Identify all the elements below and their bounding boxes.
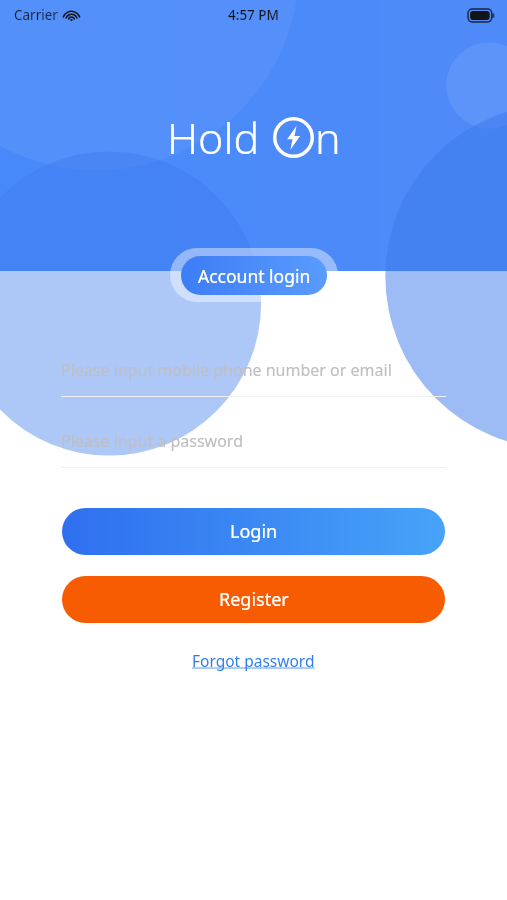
staticText: Forgot password [192,650,315,671]
button[interactable]: Account login [181,256,327,295]
button[interactable]: Login [62,508,445,555]
staticText: Login [230,519,278,544]
staticText: n [315,108,341,167]
staticText: Please input mobile phone number or emai… [61,359,392,381]
staticText: Carrier [14,6,58,24]
staticText: Register [219,587,289,612]
staticText: Please input a password [61,430,244,452]
button[interactable]: Please input mobile phone number or emai… [61,354,446,397]
button[interactable]: Register [62,576,445,623]
staticText: 4:57 PM [228,6,279,24]
staticText: Hold [167,108,260,167]
staticText: Account login [198,264,311,288]
button[interactable]: Forgot password [186,647,321,674]
button[interactable]: Please input a password [61,425,446,468]
